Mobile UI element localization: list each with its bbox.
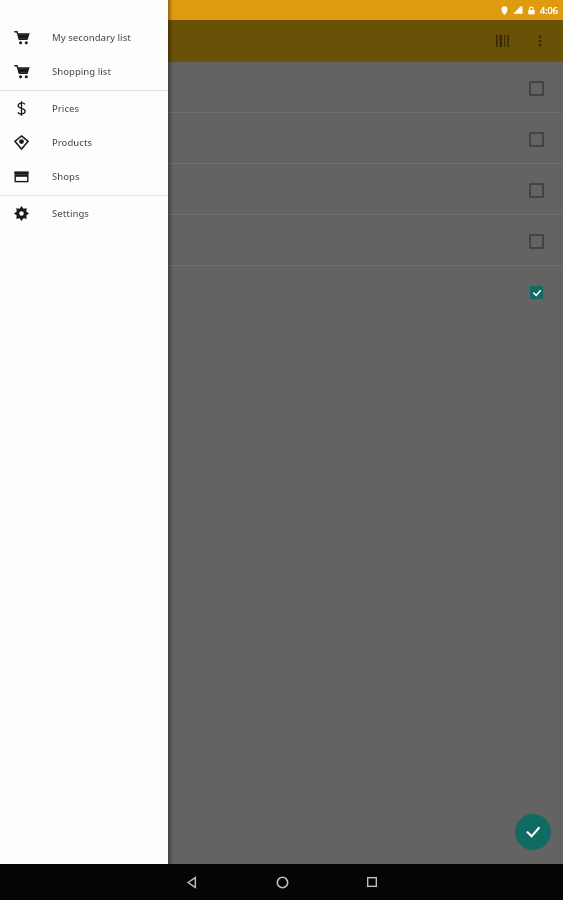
button[interactable]: Scan barcode bbox=[485, 22, 523, 60]
staticText: Shopping list bbox=[52, 65, 112, 78]
button[interactable]: Settings bbox=[0, 196, 168, 230]
button[interactable]: Toggle item bbox=[0, 62, 563, 113]
button[interactable]: Toggle item bbox=[521, 124, 551, 154]
button[interactable]: Home bbox=[251, 864, 313, 900]
staticText: Settings bbox=[52, 207, 89, 220]
button[interactable]: Toggle item bbox=[0, 266, 563, 317]
button[interactable]: Toggle item bbox=[521, 175, 551, 205]
button[interactable]: Shops bbox=[0, 159, 168, 193]
button[interactable]: Back bbox=[161, 864, 223, 900]
button[interactable]: Toggle item bbox=[0, 164, 563, 215]
button[interactable]: More options bbox=[523, 24, 557, 58]
button[interactable]: My secondary list bbox=[0, 20, 168, 54]
staticText: Products bbox=[52, 136, 93, 149]
button[interactable]: Products bbox=[0, 125, 168, 159]
button[interactable]: Shopping list bbox=[0, 54, 168, 88]
button[interactable]: Toggle item bbox=[521, 226, 551, 256]
button[interactable]: Prices bbox=[0, 91, 168, 125]
button[interactable]: Confirm bbox=[515, 814, 551, 850]
staticText: Prices bbox=[52, 102, 80, 115]
button[interactable]: Toggle item bbox=[0, 215, 563, 266]
button[interactable]: Toggle item bbox=[521, 277, 551, 307]
staticText: 4:06 bbox=[540, 4, 558, 16]
staticText: Shops bbox=[52, 170, 80, 183]
button[interactable]: Toggle item bbox=[521, 73, 551, 103]
button[interactable]: Toggle item bbox=[0, 113, 563, 164]
button[interactable]: Recent apps bbox=[341, 864, 403, 900]
staticText: My secondary list bbox=[52, 31, 131, 44]
